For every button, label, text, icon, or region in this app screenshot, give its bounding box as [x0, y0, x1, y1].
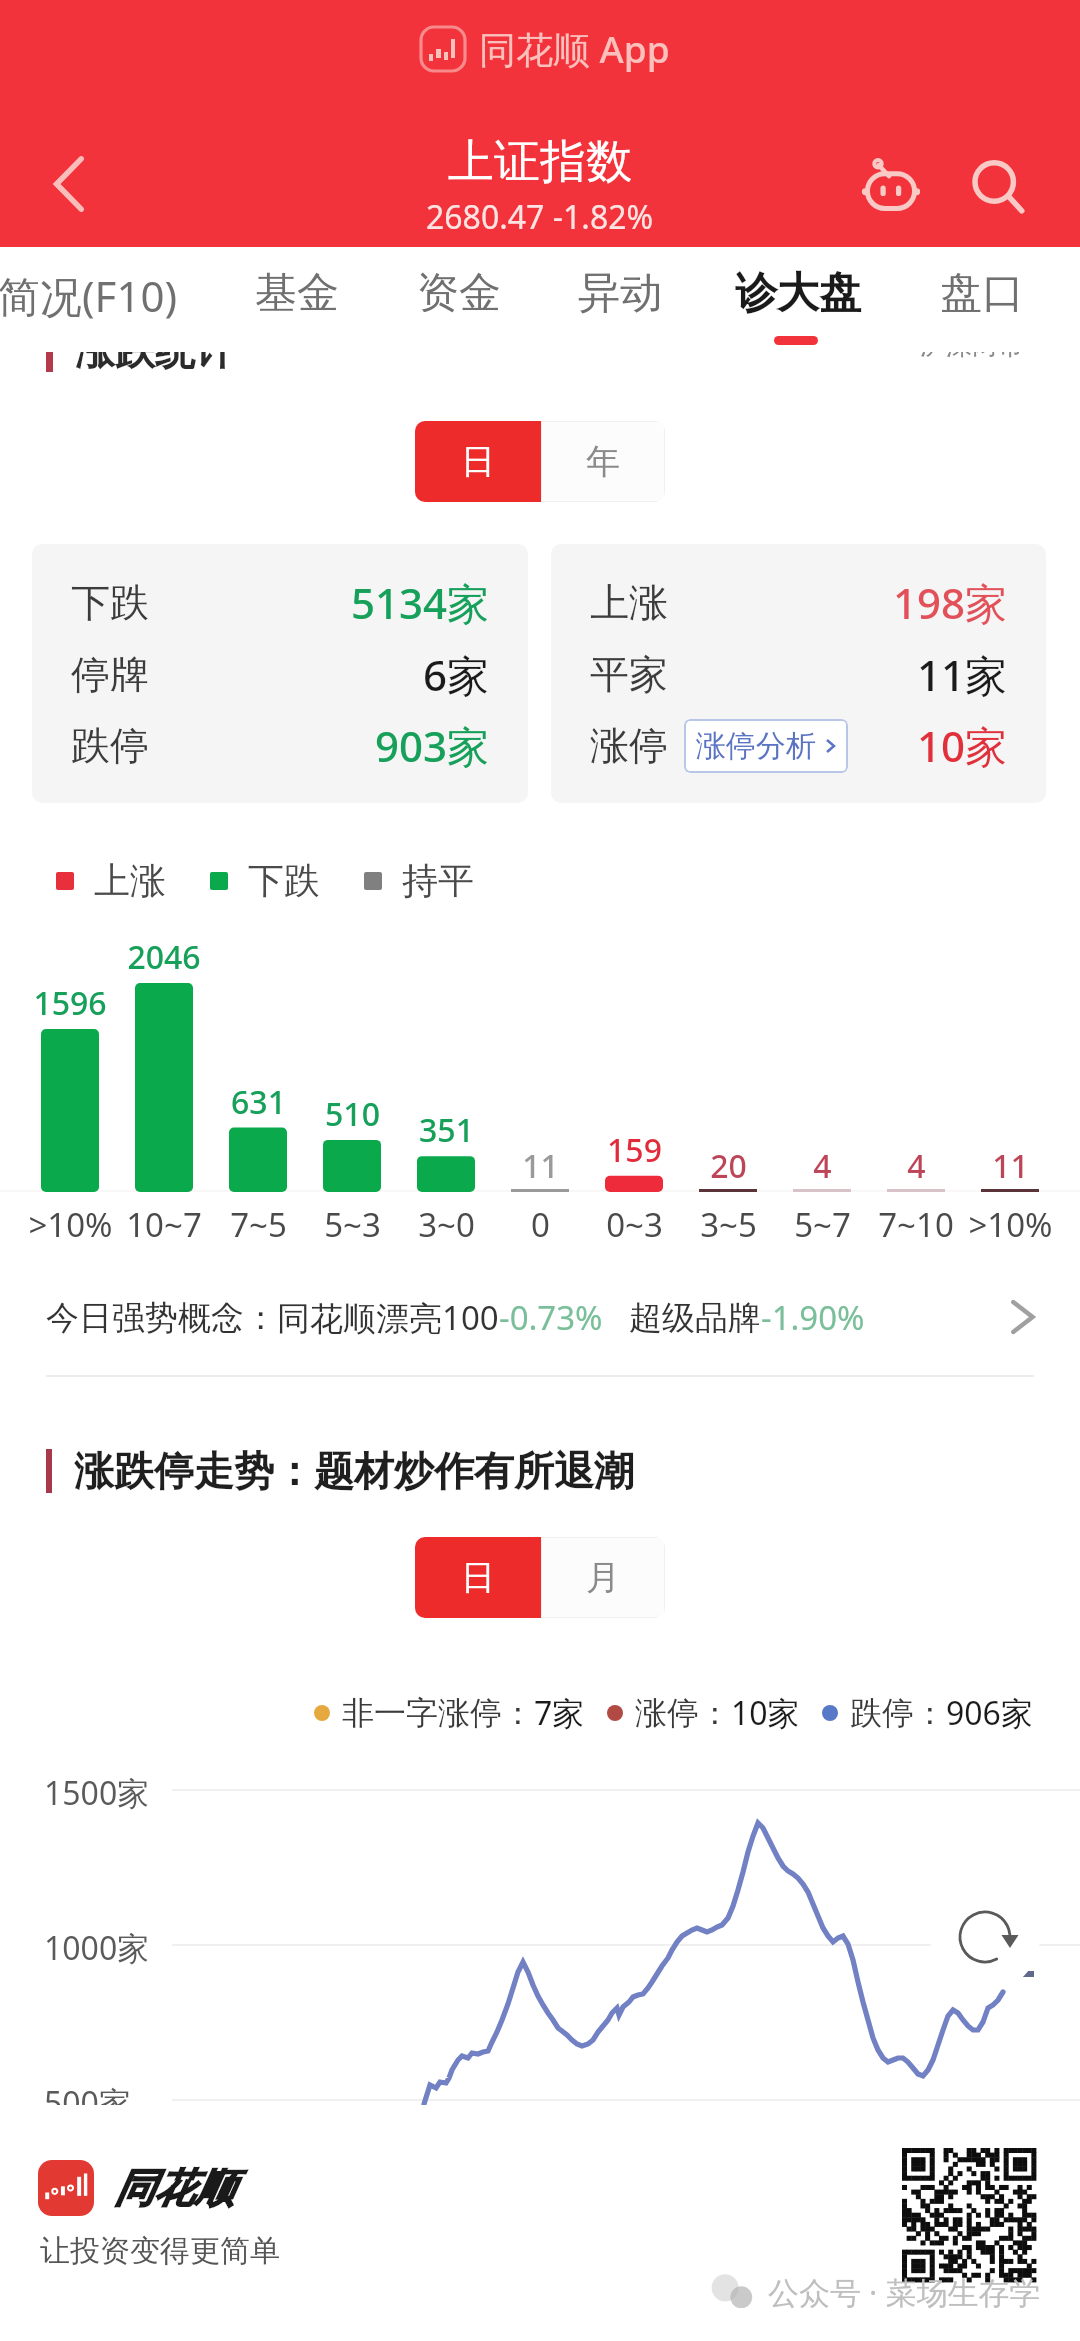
button[interactable]: 基金 [255, 247, 339, 352]
staticText: 4 [907, 1144, 926, 1188]
staticText: 159 [607, 1128, 662, 1172]
staticText: 7~10 [878, 1202, 954, 1247]
staticText: 让投资变得更简单 [40, 2232, 280, 2270]
staticText: 20 [710, 1144, 747, 1188]
staticText: 906家 [946, 1691, 1033, 1735]
staticText: 11 [992, 1144, 1029, 1188]
staticText: 500家 [44, 2081, 131, 2125]
button[interactable]: 公众号 · 菜场生存学 [708, 2266, 1041, 2318]
staticText: 2680.47 -1.82% [426, 195, 654, 239]
button[interactable]: 异动 [578, 247, 662, 352]
staticText: 非一字涨停： [342, 1693, 534, 1733]
staticText: 5~3 [324, 1202, 381, 1247]
button[interactable]: 日 [415, 421, 541, 502]
button[interactable]: 月 [541, 1537, 665, 1618]
button[interactable]: 沪深两市 [920, 329, 1054, 362]
staticText: 公众号 · 菜场生存学 [768, 2271, 1041, 2313]
staticText: >10% [968, 1202, 1053, 1247]
button[interactable]: QR code [902, 2148, 1036, 2282]
button[interactable]: 日 [415, 1537, 541, 1618]
staticText: 同花顺 [114, 2163, 234, 2213]
staticText: 上证指数 [448, 133, 632, 191]
staticText: 上涨 [590, 578, 668, 627]
staticText: 198家 [893, 574, 1008, 631]
button[interactable]: Refresh [930, 1882, 1040, 1992]
staticText: 1500家 [44, 1771, 150, 1815]
staticText: 3~5 [700, 1202, 757, 1247]
staticText: 日 [461, 440, 495, 483]
staticText: 903家 [375, 717, 490, 774]
staticText: 基金 [255, 267, 339, 320]
staticText: 跌停 [71, 721, 149, 770]
staticText: 5~7 [794, 1202, 851, 1247]
staticText: 涨停 [590, 721, 668, 770]
staticText: 今日强势概念： [46, 1297, 277, 1339]
staticText: 停牌 [71, 650, 149, 699]
staticText: 7~5 [230, 1202, 287, 1247]
staticText: 超级品牌 [629, 1297, 761, 1339]
staticText: 月 [586, 1556, 620, 1599]
button[interactable]: Search [957, 146, 1041, 230]
staticText: 下跌 [71, 578, 149, 627]
staticText: 同花顺 App [479, 23, 670, 74]
staticText: 0 [531, 1202, 550, 1247]
staticText: 10家 [917, 717, 1008, 774]
staticText: 10家 [731, 1691, 800, 1735]
staticText: 2046 [127, 935, 201, 979]
staticText: 简况(F10) [0, 267, 178, 324]
staticText: 351 [419, 1108, 474, 1152]
staticText: 11 [522, 1144, 559, 1188]
staticText: 同花顺漂亮100 [277, 1295, 499, 1340]
staticText: 诊大盘 [735, 267, 861, 320]
button[interactable]: AI assistant [849, 146, 933, 230]
button[interactable]: 资金 [417, 247, 501, 352]
staticText: 涨停： [635, 1693, 731, 1733]
button[interactable]: Back [28, 142, 112, 226]
button[interactable]: 今日强势概念： [0, 1262, 1080, 1372]
staticText: 沪深两市 [920, 329, 1024, 362]
staticText: 资金 [417, 267, 501, 320]
staticText: 涨跌统计 [75, 325, 235, 375]
staticText: 平家 [590, 650, 668, 699]
staticText: 异动 [578, 267, 662, 320]
staticText: 6家 [423, 646, 490, 703]
staticText: 涨跌停走势：题材炒作有所退潮 [74, 1446, 634, 1496]
staticText: 跌停： [850, 1693, 946, 1733]
staticText: 5134家 [351, 574, 490, 631]
staticText: 4 [813, 1144, 832, 1188]
staticText: 10~7 [126, 1202, 202, 1247]
staticText: -1.90% [761, 1295, 865, 1340]
staticText: 涨停分析 [696, 727, 816, 765]
staticText: 1000家 [44, 1926, 150, 1970]
button[interactable]: 涨停分析 [696, 719, 840, 773]
staticText: 日 [461, 1556, 495, 1599]
staticText: 0~3 [606, 1202, 663, 1247]
staticText: 上涨 [94, 858, 166, 903]
button[interactable]: 同花顺 App [421, 23, 670, 74]
staticText: 631 [231, 1080, 286, 1124]
staticText: 3~0 [418, 1202, 475, 1247]
button[interactable]: 同花顺 [38, 2160, 234, 2216]
staticText: 1596 [33, 981, 107, 1025]
button[interactable]: 简况(F10) [0, 247, 178, 352]
staticText: 11家 [917, 646, 1008, 703]
staticText: -0.73% [499, 1295, 603, 1340]
staticText: 盘口 [940, 267, 1024, 320]
button[interactable]: 盘口 [940, 247, 1024, 352]
button[interactable]: 下跌 [32, 544, 528, 803]
staticText: 年 [586, 440, 620, 483]
staticText: >10% [28, 1202, 113, 1247]
staticText: 下跌 [248, 858, 320, 903]
button[interactable]: 诊大盘 [735, 247, 861, 352]
staticText: 7家 [534, 1691, 585, 1735]
staticText: 持平 [402, 858, 474, 903]
button[interactable]: 上涨 [551, 544, 1046, 803]
button[interactable]: 年 [541, 421, 665, 502]
staticText: 510 [325, 1092, 380, 1136]
